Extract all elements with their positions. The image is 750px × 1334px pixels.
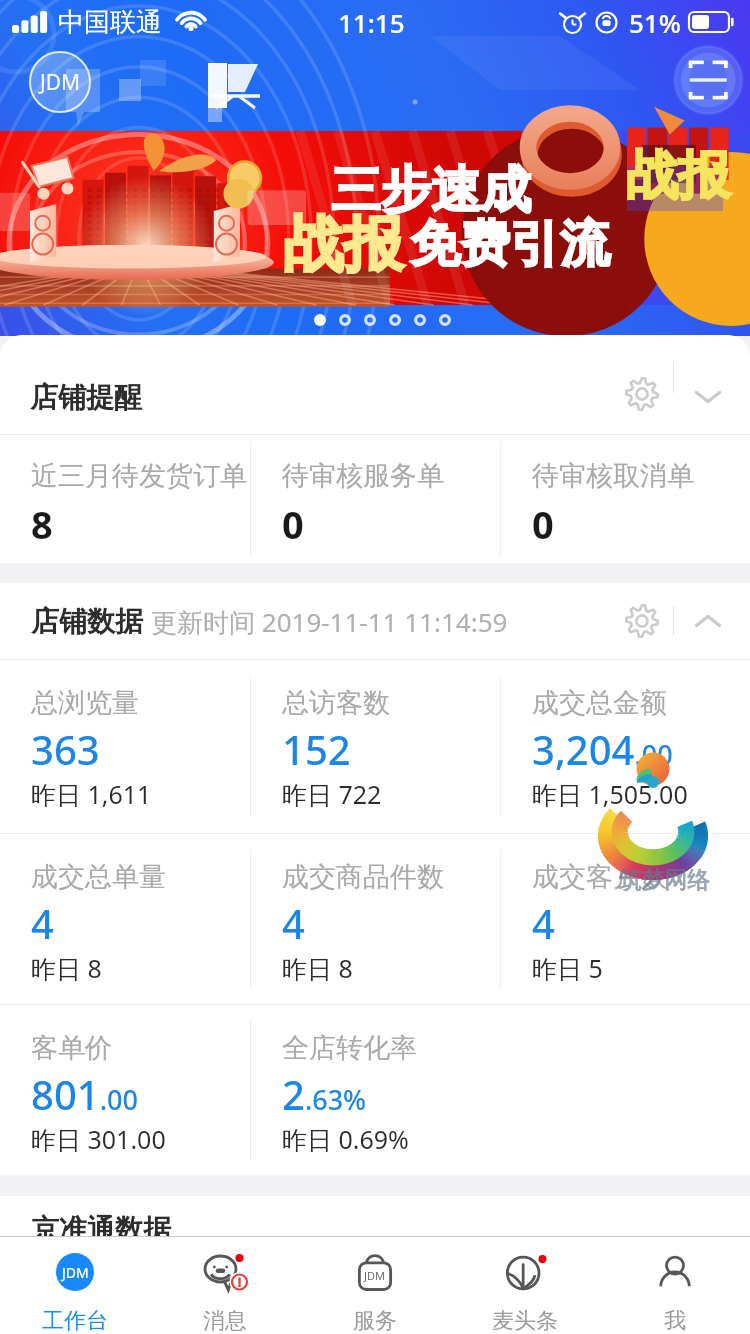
button[interactable]: 总访客数	[251, 660, 500, 833]
staticText: 京准通数据	[31, 1212, 171, 1247]
staticText: 战报	[626, 143, 730, 209]
staticText: 近三月待发货订单	[31, 459, 247, 493]
staticText: 0	[282, 498, 304, 550]
staticText: 工作台	[42, 1307, 108, 1334]
staticText: 昨日 1,611	[31, 777, 152, 811]
staticText: 客单价	[31, 1031, 112, 1065]
button[interactable]: 麦头条	[450, 1237, 600, 1334]
staticText: 三步速成	[331, 159, 531, 222]
button[interactable]: 展开	[674, 363, 742, 431]
staticText: 我	[664, 1307, 686, 1334]
staticText: 更新时间 2019-11-11 11:14:59	[151, 604, 508, 640]
staticText: 消息	[203, 1307, 247, 1334]
button[interactable]: 成交总金额	[501, 660, 750, 833]
staticText: 待审核取消单	[532, 459, 694, 493]
button[interactable]: 待审核取消单	[501, 435, 750, 563]
button[interactable]: 成交商品件数	[251, 834, 500, 1004]
button[interactable]: 我	[600, 1237, 750, 1334]
staticText: 昨日 1,505.00	[532, 777, 688, 811]
staticText: 昨日 8	[31, 951, 102, 985]
staticText: 昨日 722	[282, 777, 382, 811]
staticText: 免费引流	[410, 213, 610, 276]
staticText: 中国联通	[58, 6, 162, 39]
staticText: 待审核服务单	[282, 459, 444, 493]
button[interactable]: 京准通数据	[0, 1196, 750, 1258]
staticText: 昨日 0.69%	[282, 1122, 409, 1156]
button[interactable]: 近三月待发货订单	[0, 435, 250, 563]
button[interactable]: 全店转化率	[251, 1005, 500, 1175]
button[interactable]: 扫一扫	[678, 41, 750, 119]
button[interactable]: JDM	[0, 1237, 150, 1334]
staticText: 战报	[283, 207, 403, 283]
staticText: 总浏览量	[31, 686, 139, 720]
staticText: 店铺数据	[31, 604, 143, 639]
staticText: 4	[31, 896, 54, 950]
staticText: 4	[532, 896, 555, 950]
staticText: 2.63%	[282, 1067, 367, 1121]
button[interactable]: 设置	[611, 590, 673, 652]
button[interactable]: 收起	[674, 587, 742, 655]
staticText: 昨日 8	[282, 951, 353, 985]
staticText: 麦头条	[492, 1307, 558, 1334]
staticText: 服务	[353, 1307, 397, 1334]
staticText: 成交总单量	[31, 860, 166, 894]
button[interactable]: 客单价	[0, 1005, 250, 1175]
staticText: 总访客数	[282, 686, 390, 720]
staticText: 昨日 301.00	[31, 1122, 166, 1156]
staticText: 4	[282, 896, 305, 950]
staticText: JDM	[364, 1268, 386, 1283]
button[interactable]: 总浏览量	[0, 660, 250, 833]
staticText: 8	[31, 498, 53, 550]
button[interactable]: JDM	[300, 1237, 450, 1334]
staticText: 152	[282, 722, 351, 776]
button[interactable]: 店铺提醒	[0, 335, 750, 434]
button[interactable]: 待审核服务单	[251, 435, 500, 563]
staticText: 成交客户数	[532, 860, 667, 894]
staticText: 801.00	[31, 1067, 138, 1121]
staticText: JDM	[40, 68, 81, 97]
button[interactable]: 店铺数据	[0, 583, 750, 659]
staticText: 昨日 5	[532, 951, 603, 985]
staticText: 3,204.00	[532, 722, 673, 776]
staticText: 成交商品件数	[282, 860, 444, 894]
staticText: 筑梦网络	[618, 866, 710, 895]
staticText: 全店转化率	[282, 1031, 417, 1065]
staticText: 363	[31, 722, 100, 776]
staticText: 0	[532, 498, 554, 550]
button[interactable]: 设置	[611, 363, 673, 425]
staticText: JDM	[62, 1263, 89, 1282]
button[interactable]: 成交客户数	[501, 834, 750, 1004]
staticText: 店铺提醒	[30, 380, 142, 415]
button[interactable]: 成交总单量	[0, 834, 250, 1004]
staticText: 成交总金额	[532, 686, 667, 720]
button[interactable]: 消息	[150, 1237, 300, 1334]
staticText: 11:15	[338, 5, 405, 40]
staticText: 51%	[629, 5, 681, 40]
